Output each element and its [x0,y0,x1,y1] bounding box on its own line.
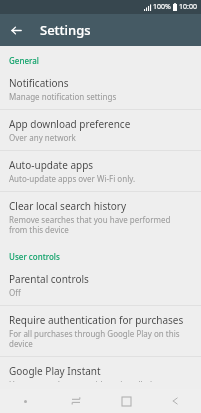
staticText: Settings [40,21,91,39]
staticText: Notifications [9,76,69,90]
staticText: Use apps and games without installation [9,379,162,382]
staticText: Over any network [9,132,76,143]
staticText: Clear local search history [9,199,127,213]
button[interactable]: Parental controls [0,265,201,305]
staticText: Manage notification settings [9,91,117,102]
staticText: User controls [9,251,60,262]
staticText: 100% [153,2,171,12]
staticText: Require authentication for purchases [9,313,184,327]
button[interactable]: Clear local search history [0,192,201,242]
button[interactable]: Auto-update apps [0,151,201,191]
staticText: Google Play Instant [9,364,101,378]
button[interactable]: Back [151,389,201,413]
button[interactable]: Home [101,389,151,413]
staticText: 10:00 [179,2,197,12]
staticText: App download preference [9,117,131,131]
button[interactable]: Menu [0,389,51,413]
button[interactable]: App download preference [0,110,201,150]
button[interactable]: Back [0,14,32,46]
staticText: Parental controls [9,272,89,286]
button[interactable]: Require authentication for purchases [0,306,201,356]
button[interactable]: Google Play Instant [0,357,201,389]
staticText: Auto-update apps [9,158,94,172]
button[interactable]: Recent apps [51,389,101,413]
staticText: Auto-update apps over Wi-Fi only. [9,173,136,184]
staticText: For all purchases through Google Play on… [9,328,192,349]
staticText: Remove searches that you have performed … [9,214,171,235]
staticText: General [9,55,39,66]
staticText: Off [9,287,21,298]
button[interactable]: Notifications [0,69,201,109]
